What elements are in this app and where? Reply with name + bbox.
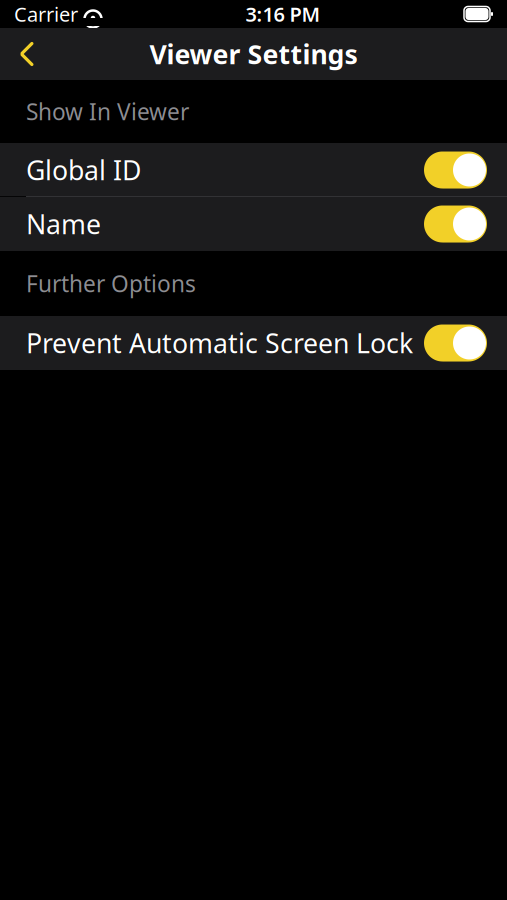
staticText: 3:16 PM — [245, 1, 320, 27]
staticText: Carrier — [14, 1, 78, 27]
button[interactable]: Prevent Automatic Screen Lock — [0, 316, 507, 370]
button[interactable]: Name — [0, 197, 507, 251]
button[interactable]: Back — [0, 28, 54, 80]
staticText: Prevent Automatic Screen Lock — [26, 325, 413, 361]
staticText: Viewer Settings — [149, 36, 357, 72]
staticText: Name — [26, 206, 101, 242]
button[interactable]: Global ID — [0, 143, 507, 197]
staticText: Further Options — [26, 268, 196, 298]
staticText: Global ID — [26, 152, 141, 188]
staticText: Show In Viewer — [26, 96, 189, 126]
